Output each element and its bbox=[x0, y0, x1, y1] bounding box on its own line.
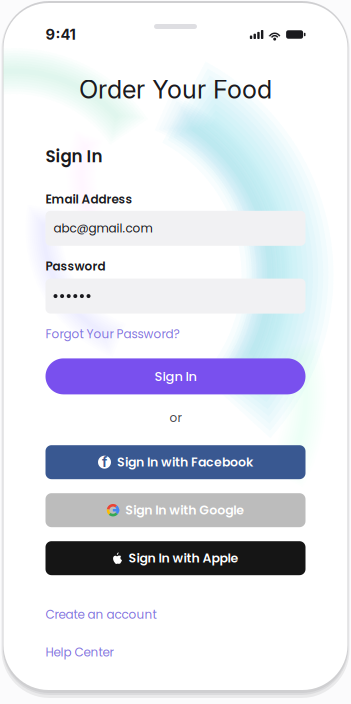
staticText: Sign In with Google bbox=[125, 501, 244, 519]
staticText: Create an account bbox=[45, 606, 156, 623]
staticText: f bbox=[102, 454, 107, 470]
staticText: abc@gmail.com bbox=[53, 220, 152, 237]
staticText: Email Address bbox=[45, 191, 132, 208]
staticText: or bbox=[169, 409, 181, 426]
staticText: Help Center bbox=[45, 644, 113, 661]
staticText: Sign In with Facebook bbox=[117, 453, 253, 471]
staticText: Sign In bbox=[45, 145, 102, 168]
staticText: Password bbox=[45, 258, 105, 275]
button[interactable]: Forgot Your Password? bbox=[45, 326, 179, 342]
staticText: Forgot Your Password? bbox=[45, 326, 179, 342]
button[interactable]: Sign In with Apple bbox=[45, 541, 305, 575]
button[interactable]: f bbox=[45, 445, 305, 479]
staticText: Order Your Food bbox=[79, 74, 272, 105]
button[interactable]: Sign In bbox=[45, 358, 305, 394]
button[interactable]: Create an account bbox=[45, 606, 156, 623]
staticText: Sign In with Apple bbox=[128, 549, 238, 567]
staticText: Sign In bbox=[154, 367, 196, 385]
staticText: 9:41 bbox=[45, 26, 75, 43]
button[interactable]: Sign In with Google bbox=[45, 493, 305, 527]
button[interactable]: Help Center bbox=[45, 644, 113, 661]
